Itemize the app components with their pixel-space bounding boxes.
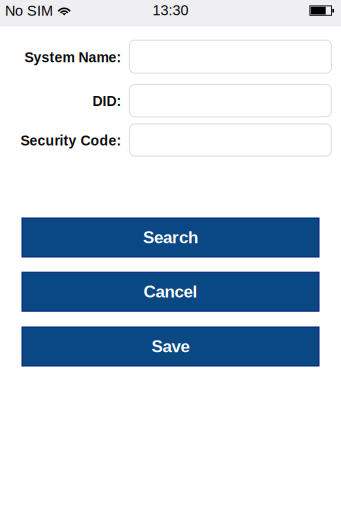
staticText: Cancel	[143, 282, 197, 301]
staticText: Search	[143, 228, 198, 247]
button[interactable]: DID:	[129, 84, 331, 117]
button[interactable]: Search	[22, 218, 319, 257]
button[interactable]: Cancel	[22, 272, 319, 311]
staticText: DID:	[92, 93, 121, 109]
staticText: Save	[151, 337, 189, 356]
button[interactable]: Security Code:	[129, 124, 331, 156]
staticText: Security Code:	[20, 133, 121, 148]
staticText: 13:30	[152, 2, 188, 18]
button[interactable]: System Name:	[129, 40, 331, 73]
staticText: System Name:	[24, 49, 121, 65]
button[interactable]: Save	[22, 327, 319, 366]
staticText: No SIM	[5, 3, 53, 19]
